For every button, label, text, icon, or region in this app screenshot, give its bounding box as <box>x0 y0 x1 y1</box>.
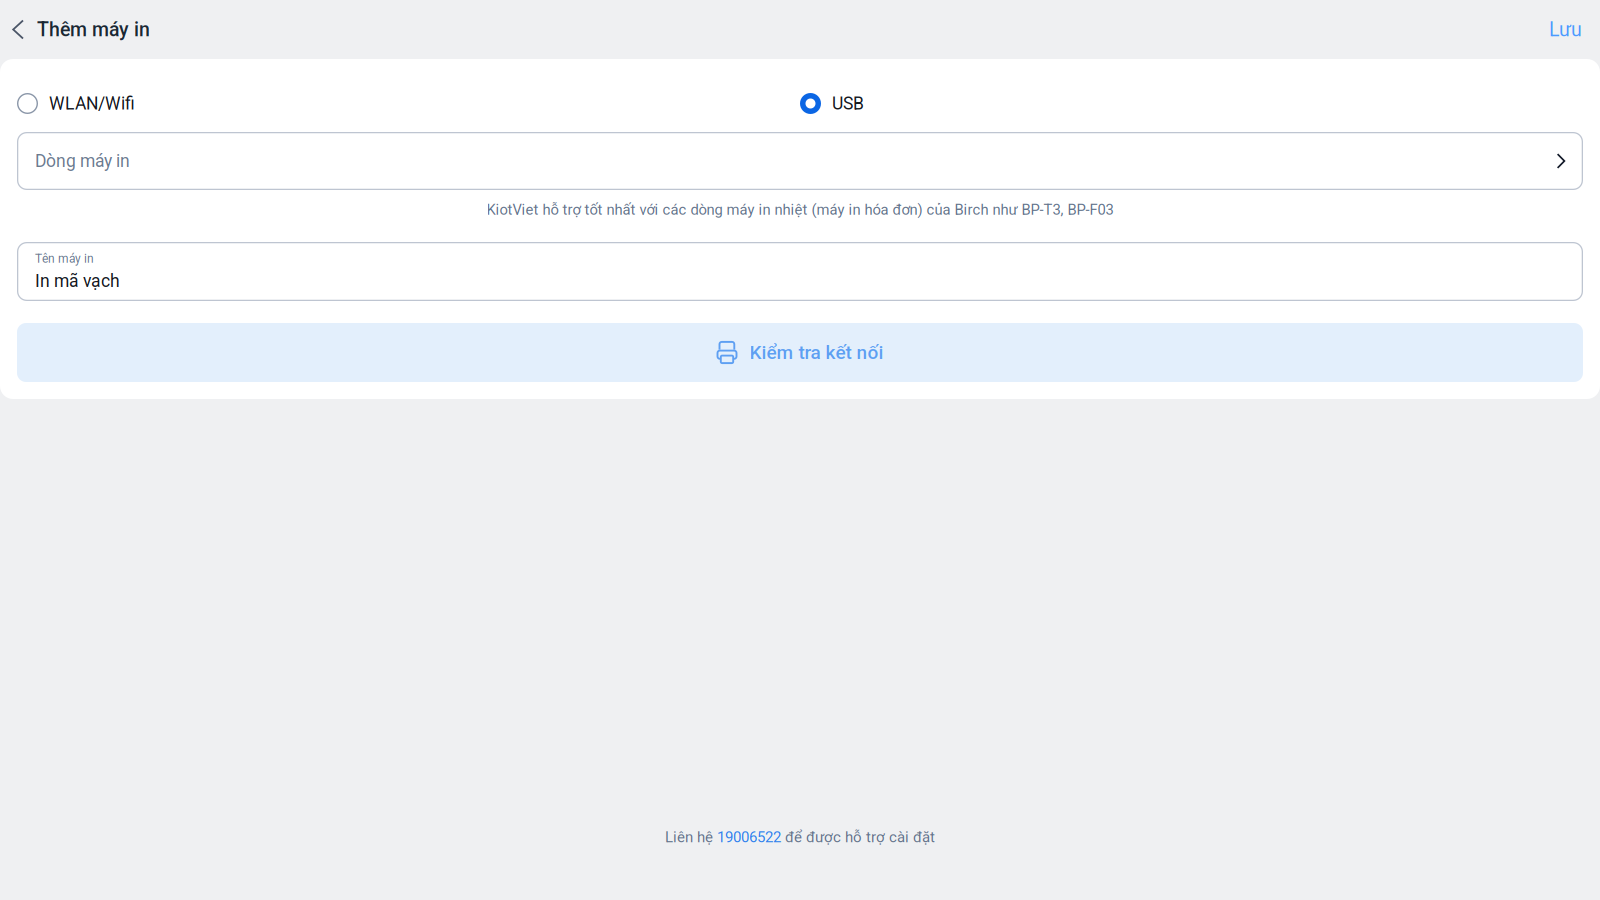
staticText: KiotViet hỗ trợ tốt nhất với các dòng má… <box>486 201 1113 218</box>
staticText: Kiểm tra kết nối <box>749 341 883 364</box>
button[interactable]: Thêm máy in <box>0 5 160 54</box>
staticText: Liên hệ <box>665 828 717 846</box>
button[interactable]: Kiểm tra kết nối <box>17 323 1583 382</box>
staticText: Lưu <box>1549 18 1582 41</box>
staticText: WLAN/Wifi <box>49 93 135 114</box>
staticText: để được hỗ trợ cài đặt <box>781 828 935 846</box>
staticText: Dòng máy in <box>35 151 130 171</box>
button[interactable]: Dòng máy in <box>17 132 1583 190</box>
staticText: Thêm máy in <box>37 18 150 41</box>
button[interactable]: WLAN/Wifi <box>17 87 800 120</box>
staticText: 19006522 <box>717 828 781 846</box>
staticText: In mã vạch <box>35 271 120 291</box>
button[interactable]: USB <box>800 87 1583 120</box>
button[interactable]: Lưu <box>1535 5 1600 54</box>
staticText: Tên máy in <box>35 252 94 266</box>
staticText: USB <box>832 93 864 114</box>
button[interactable]: 19006522 <box>717 828 781 846</box>
